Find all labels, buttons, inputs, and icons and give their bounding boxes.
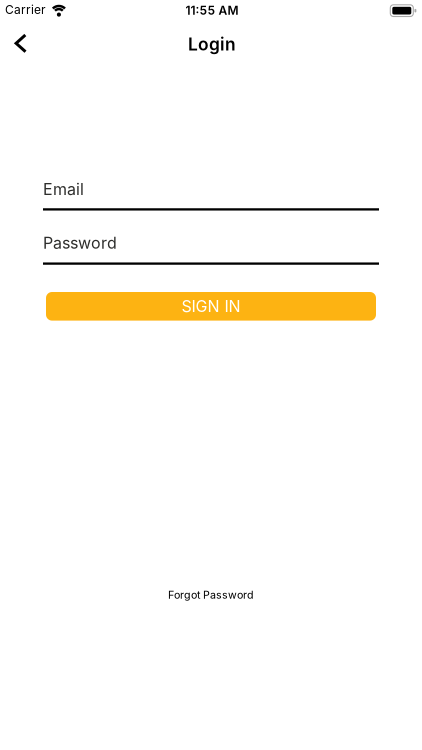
- textField[interactable]: Password: [43, 233, 379, 252]
- button[interactable]: SIGN IN: [46, 292, 376, 321]
- staticText: Email: [43, 180, 84, 199]
- staticText: Login: [188, 34, 236, 54]
- staticText: 11:55 AM: [185, 3, 238, 17]
- staticText: Password: [43, 233, 117, 252]
- button[interactable]: Forgot Password: [168, 589, 254, 601]
- staticText: Forgot Password: [168, 589, 254, 601]
- textField[interactable]: Email: [43, 180, 379, 199]
- staticText: SIGN IN: [181, 297, 240, 316]
- button[interactable]: Back: [3, 31, 39, 56]
- staticText: Carrier: [5, 2, 46, 17]
